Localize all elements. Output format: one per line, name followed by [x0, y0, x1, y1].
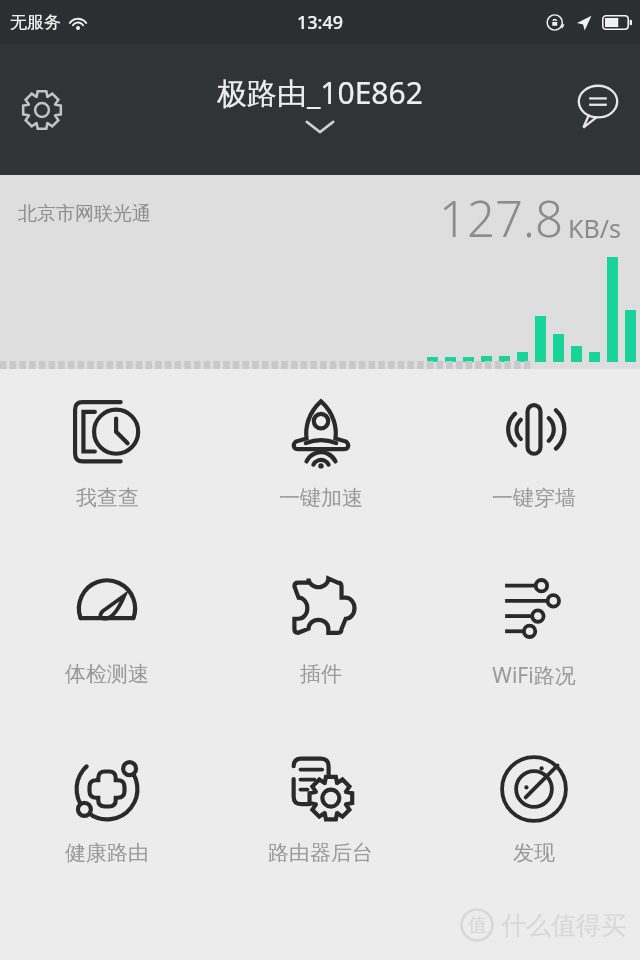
staticText: 插件	[300, 661, 342, 687]
button[interactable]: 极路由_10E862	[217, 72, 423, 135]
button[interactable]: 插件	[214, 567, 427, 687]
staticText: 什么值得买	[501, 910, 626, 941]
button[interactable]: 我查查	[0, 391, 214, 511]
button[interactable]: 路由器后台	[214, 746, 427, 866]
staticText: 值	[468, 913, 487, 937]
staticText: 127.8	[439, 185, 563, 252]
staticText: 北京市网联光通	[18, 202, 151, 226]
staticText: 一键加速	[279, 485, 363, 511]
staticText: 一键穿墙	[492, 485, 576, 511]
button[interactable]: Messages	[566, 72, 630, 136]
button[interactable]: 健康路由	[0, 746, 214, 866]
staticText: 我查查	[76, 485, 139, 511]
staticText: 路由器后台	[268, 840, 373, 866]
button[interactable]: Settings	[10, 78, 74, 142]
staticText: WiFi路况	[492, 661, 576, 690]
staticText: 13:49	[297, 10, 344, 35]
button[interactable]: 一键穿墙	[427, 391, 640, 511]
button[interactable]: 一键加速	[214, 391, 427, 511]
staticText: 健康路由	[65, 840, 149, 866]
staticText: KB/s	[568, 211, 622, 245]
staticText: 体检测速	[65, 661, 149, 687]
button[interactable]: WiFi路况	[427, 567, 640, 690]
button[interactable]: 体检测速	[0, 567, 214, 687]
button[interactable]: 发现	[427, 746, 640, 866]
staticText: 极路由_10E862	[217, 72, 423, 113]
staticText: 无服务	[10, 12, 61, 33]
staticText: 发现	[513, 840, 555, 866]
